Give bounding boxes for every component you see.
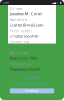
button[interactable]: Need help? Contact support [10,82,54,86]
staticText: Email address [10,18,27,22]
button[interactable]: Continue [10,88,54,93]
button[interactable]: Edit details [10,76,54,80]
staticText: +1 (202) 555-0147 [10,33,39,39]
staticText: Jonathan M. Carter [10,11,43,16]
staticText: Need help? Contact support [12,82,52,86]
staticText: Full name [10,7,23,11]
button[interactable]: Preferred clinic [10,63,54,71]
staticText: ▂▄ ⌁ ▮ [52,1,61,4]
staticText: Date of birth [10,52,28,55]
staticText: Edit details [24,76,39,80]
button[interactable]: Full name [10,7,54,16]
staticText: Preferred clinic [10,63,32,66]
staticText: 9:41 [3,1,10,4]
staticText: Downtown Health [10,67,40,72]
staticText: j.carter@mail.com [10,22,44,27]
button[interactable]: Date of birth [10,52,54,60]
staticText: March 14, 1992 [10,55,37,61]
button[interactable]: Phone number [10,29,54,38]
staticText: Phone number [10,29,32,33]
staticText: Continue [25,89,39,93]
button[interactable]: Email address [10,18,54,27]
staticText: Insurance plan [10,40,30,44]
button[interactable]: Insurance plan [10,40,54,49]
